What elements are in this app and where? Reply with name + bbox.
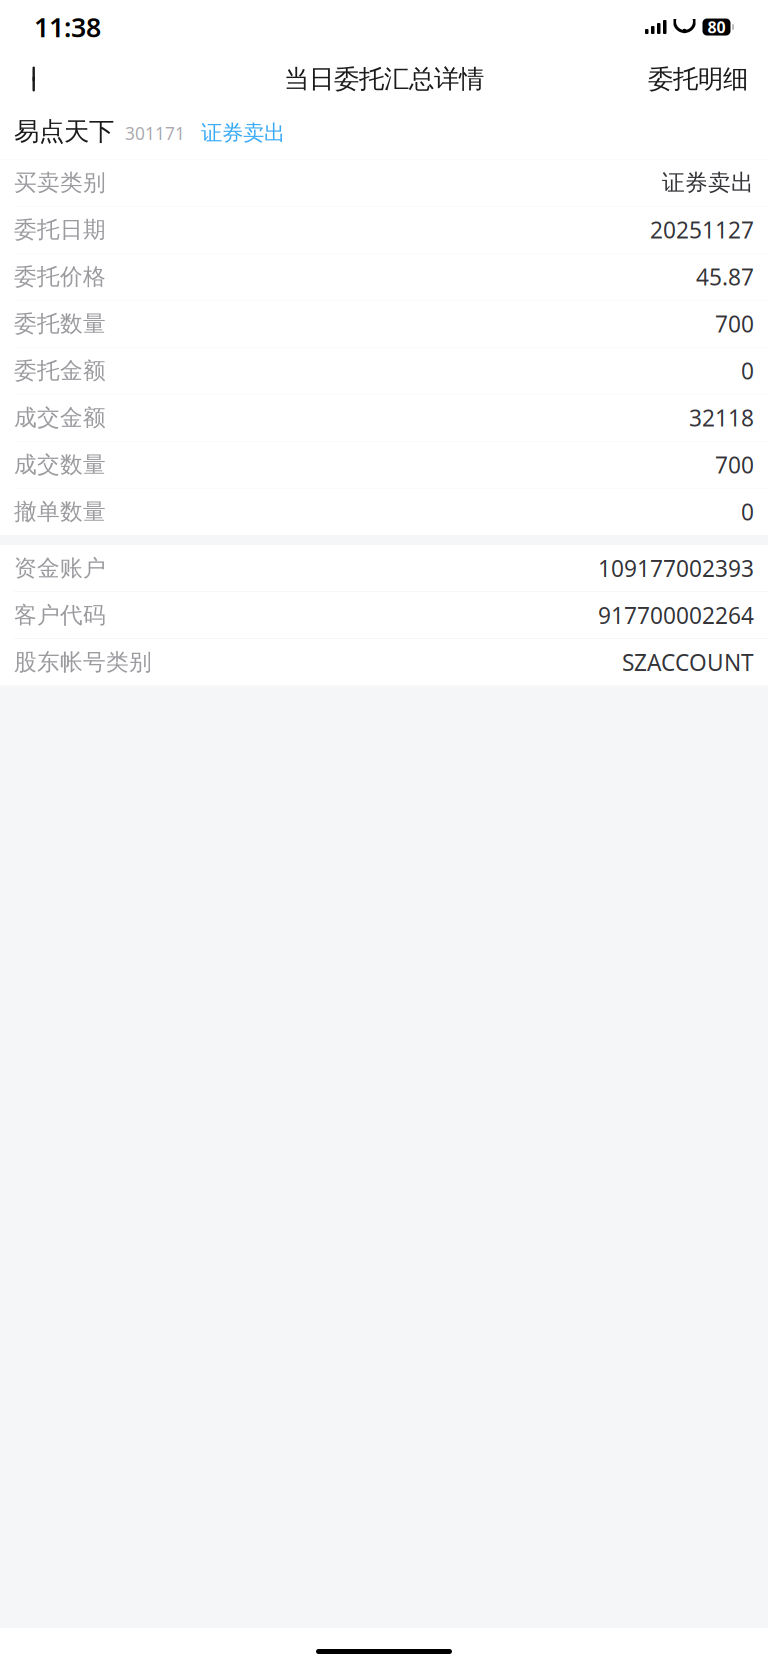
- staticText: 11:38: [34, 9, 101, 45]
- staticText: 0: [741, 356, 754, 386]
- staticText: 撤单数量: [14, 498, 106, 526]
- staticText: 0: [741, 497, 754, 527]
- button[interactable]: Back: [14, 57, 58, 101]
- staticText: 301171: [125, 122, 185, 145]
- staticText: 买卖类别: [14, 169, 106, 197]
- staticText: 委托明细: [648, 63, 748, 94]
- staticText: 32118: [689, 403, 754, 433]
- staticText: 资金账户: [14, 554, 106, 582]
- staticText: 700: [715, 309, 754, 339]
- staticText: 80: [707, 16, 725, 38]
- staticText: 委托日期: [14, 216, 106, 244]
- staticText: 当日委托汇总详情: [284, 63, 484, 94]
- staticText: 委托金额: [14, 357, 106, 385]
- staticText: 700: [715, 450, 754, 480]
- staticText: 成交数量: [14, 451, 106, 479]
- staticText: 45.87: [696, 262, 754, 292]
- staticText: 委托数量: [14, 310, 106, 338]
- staticText: 917700002264: [598, 600, 754, 630]
- staticText: 成交金额: [14, 404, 106, 432]
- staticText: 20251127: [650, 215, 754, 245]
- staticText: 客户代码: [14, 601, 106, 629]
- staticText: 委托价格: [14, 263, 106, 291]
- staticText: 证券卖出: [201, 120, 285, 146]
- staticText: 股东帐号类别: [14, 648, 152, 676]
- staticText: 易点天下: [14, 116, 114, 147]
- button[interactable]: 委托明细: [642, 57, 754, 101]
- staticText: 证券卖出: [662, 169, 754, 197]
- staticText: SZACCOUNT: [622, 647, 754, 677]
- staticText: 109177002393: [598, 553, 754, 583]
